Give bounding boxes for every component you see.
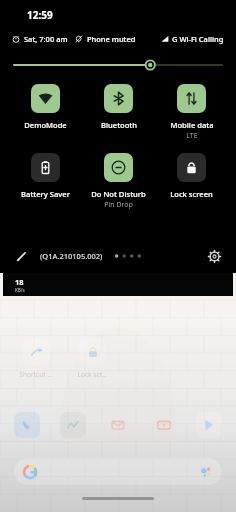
staticText: Phone muted: [87, 34, 136, 44]
button[interactable]: Lock screen: [155, 153, 228, 199]
button[interactable]: Mobile data: [155, 84, 228, 141]
button[interactable]: App: [151, 412, 177, 438]
staticText: Sat, 7:00 am: [24, 34, 68, 44]
button[interactable]: [79, 338, 106, 365]
button[interactable]: App: [14, 412, 40, 438]
staticText: (Q1A.210105.002): [40, 251, 103, 261]
button[interactable]: App: [196, 412, 222, 438]
staticText: Lock scr...: [77, 370, 107, 379]
button[interactable]: App: [105, 412, 131, 438]
staticText: 18: [15, 277, 24, 287]
button[interactable]: Brightness: [14, 57, 222, 73]
button[interactable]: Battery Saver: [8, 153, 82, 199]
staticText: DemoMode: [24, 120, 67, 130]
button[interactable]: [23, 338, 50, 365]
button[interactable]: App: [60, 412, 86, 438]
staticText: Lock screen: [170, 189, 213, 199]
button[interactable]: Do Not Disturb: [82, 153, 155, 210]
staticText: Do Not Disturb: [91, 189, 146, 199]
staticText: KB/s: [15, 287, 25, 293]
staticText: Shortcut ...: [19, 370, 53, 379]
staticText: Bluetooth: [101, 120, 137, 130]
staticText: G Wi-Fi Calling: [172, 34, 224, 44]
staticText: Pin Drop: [104, 200, 133, 210]
staticText: Battery Saver: [21, 189, 70, 199]
button[interactable]: DemoMode: [8, 84, 82, 130]
staticText: LTE: [186, 131, 198, 141]
button[interactable]: Edit tiles: [12, 247, 30, 265]
button[interactable]: Settings: [204, 246, 224, 266]
button[interactable]: Search: [14, 458, 222, 485]
button[interactable]: Bluetooth: [82, 84, 155, 130]
staticText: Mobile data: [170, 120, 214, 130]
staticText: 12:59: [27, 8, 53, 22]
